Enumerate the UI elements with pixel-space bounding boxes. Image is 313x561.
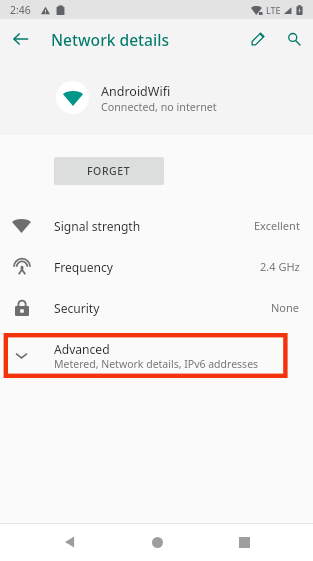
button[interactable]: FORGET	[54, 157, 164, 185]
staticText: 2.4 GHz	[260, 259, 300, 274]
button[interactable]: Edit	[243, 24, 273, 54]
staticText: Frequency	[54, 259, 260, 275]
staticText: None	[271, 300, 300, 315]
staticText: 2:46	[10, 3, 31, 17]
staticText: Metered, Network details, IPv6 addresses	[54, 357, 259, 371]
button[interactable]: Back	[50, 523, 88, 561]
staticText: FORGET	[87, 164, 131, 178]
staticText: LTE	[266, 4, 281, 16]
button[interactable]: Security	[0, 287, 313, 328]
button[interactable]: Navigate up	[7, 25, 35, 53]
staticText: Advanced	[54, 341, 110, 357]
button[interactable]: Frequency	[0, 246, 313, 287]
button[interactable]: Recent apps	[225, 523, 263, 561]
button[interactable]: Home	[138, 523, 176, 561]
button[interactable]: Advanced	[0, 328, 313, 378]
staticText: Excellent	[254, 218, 300, 233]
staticText: Network details	[51, 29, 170, 50]
staticText: AndroidWifi	[101, 83, 171, 100]
staticText: Connected, no internet	[101, 100, 217, 115]
staticText: Signal strength	[54, 218, 254, 234]
button[interactable]: Search	[279, 24, 309, 54]
button[interactable]: Signal strength	[0, 205, 313, 246]
staticText: Security	[54, 300, 271, 316]
